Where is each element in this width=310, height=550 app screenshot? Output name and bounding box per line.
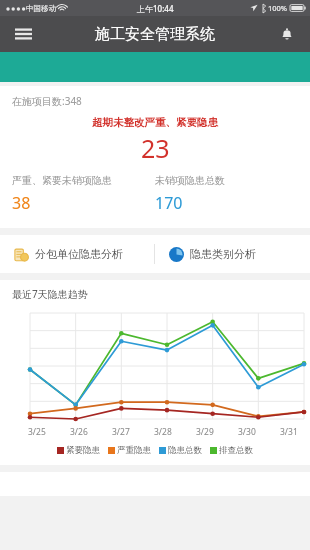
staticText: 隐患类别分析 bbox=[190, 247, 256, 261]
staticText: 23 bbox=[141, 131, 170, 165]
staticText: 排查总数 bbox=[219, 445, 253, 456]
staticText: 中国移动 bbox=[26, 4, 56, 13]
button[interactable]: 分包单位隐患分析 bbox=[0, 235, 154, 273]
button[interactable]: Menu bbox=[6, 17, 40, 51]
button[interactable]: 隐患类别分析 bbox=[155, 235, 310, 273]
staticText: 3/25 bbox=[28, 426, 46, 438]
staticText: 超期未整改严重、紧要隐患 bbox=[92, 116, 218, 129]
staticText: 严重、紧要未销项隐患 bbox=[12, 174, 112, 187]
staticText: 3/27 bbox=[112, 426, 130, 438]
staticText: 38 bbox=[12, 192, 31, 214]
staticText: 未销项隐患总数 bbox=[155, 174, 225, 187]
staticText: 3/30 bbox=[238, 426, 256, 438]
staticText: 隐患总数 bbox=[168, 445, 202, 456]
staticText: 最近7天隐患趋势 bbox=[12, 287, 88, 301]
staticText: 紧要隐患 bbox=[66, 445, 100, 456]
staticText: 施工安全管理系统 bbox=[95, 25, 215, 44]
staticText: 3/31 bbox=[280, 426, 298, 438]
staticText: 分包单位隐患分析 bbox=[35, 247, 123, 261]
staticText: 严重隐患 bbox=[117, 445, 151, 456]
staticText: 在施项目数:348 bbox=[12, 94, 82, 108]
staticText: 3/26 bbox=[70, 426, 88, 438]
staticText: 上午10:44 bbox=[137, 3, 174, 14]
button[interactable]: Notifications bbox=[270, 17, 304, 51]
staticText: 3/28 bbox=[154, 426, 172, 438]
staticText: 170 bbox=[155, 192, 183, 214]
staticText: 100% bbox=[268, 3, 288, 13]
staticText: 3/29 bbox=[196, 426, 214, 438]
